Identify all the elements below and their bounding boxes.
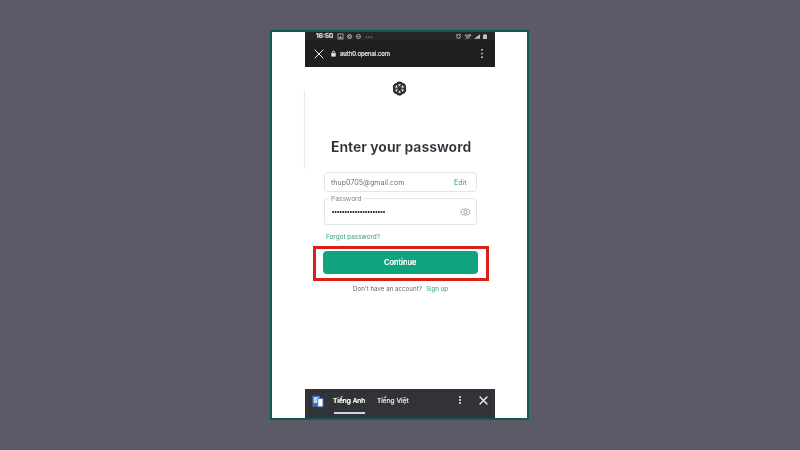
button[interactable]: More options — [450, 390, 470, 410]
staticText: Tiếng Việt — [377, 397, 409, 405]
staticText: Don't have an account? — [353, 285, 422, 293]
button[interactable]: Tiếng Anh — [331, 389, 368, 418]
staticText: Continue — [384, 258, 417, 267]
button[interactable]: Tiếng Việt — [375, 389, 410, 418]
button[interactable]: Close translation bar — [473, 390, 493, 410]
button[interactable]: More options — [473, 45, 490, 62]
button[interactable]: thup0705@gmail.com — [324, 172, 477, 192]
button[interactable]: Show password — [460, 206, 471, 217]
staticText: Enter your password — [331, 139, 472, 156]
button[interactable]: Sign up — [426, 285, 449, 293]
staticText: Sign up — [426, 285, 449, 293]
staticText: auth0.openai.com — [340, 50, 391, 57]
staticText: Password — [331, 195, 362, 203]
staticText: thup0705@gmail.com — [331, 178, 405, 187]
staticText: Tiếng Anh — [333, 397, 366, 405]
staticText: Edit — [454, 178, 467, 187]
button[interactable]: Edit — [454, 178, 467, 187]
button[interactable]: Continue — [323, 251, 478, 274]
button[interactable]: Forgot password? — [326, 232, 381, 242]
button[interactable]: Show password — [324, 198, 477, 225]
staticText: 16:50 — [316, 32, 334, 40]
button[interactable]: Close tab — [310, 45, 327, 62]
